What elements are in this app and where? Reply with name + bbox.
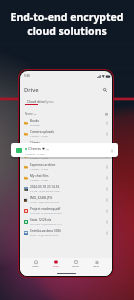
button[interactable]: Contracts 2024 [20,150,112,161]
staticText: 8 folders · 14 files [30,135,48,138]
staticText: 13.12 MB · 21 Jun 2024 at 09:31 [30,212,62,215]
other: More options [106,220,108,224]
staticText: 2024-03-18 23.14.52 [30,185,60,189]
staticText: End-to-end encrypted cloud solutions [0,10,134,38]
staticText: Clients [30,141,41,145]
staticText: 3 folders · 14 files [30,157,48,160]
staticText: Cloud drive [27,99,45,103]
other: More options [106,121,108,125]
staticText: IMG_32406.JPG [30,196,53,200]
staticText: Project roadmap.pdf [30,207,61,211]
button[interactable]: Search [101,86,108,93]
button[interactable]: 2024-03-18 23.14.52 [20,183,112,194]
other: More options [111,149,113,153]
staticText: Contracts 2024 [30,152,53,156]
staticText: 7 folders · 12 files [30,168,48,171]
staticText: 9:30 [24,74,30,78]
button[interactable]: My chat files [20,172,112,183]
button[interactable]: Clients [11,143,118,157]
button[interactable]: Project roadmap.pdf [20,205,112,216]
staticText: Menu [93,265,100,268]
staticText: Expenses archive [30,163,56,167]
button[interactable]: Name [24,112,37,116]
other: More options [106,198,108,202]
staticText: (2) [46,147,49,150]
staticText: 6 folders · 13 files [30,146,48,149]
other: More options [106,231,108,235]
staticText: Snimka-zaslona 5056 [30,229,61,233]
staticText: 15.18 MB · 18 Jun 2024 at 11:11 [30,223,62,226]
button[interactable]: Clients [20,139,112,150]
button[interactable]: Cloud drive [25,99,47,103]
staticText: 6 folders · 13 files [25,152,45,155]
staticText: Books [30,119,40,123]
staticText: 7 folders · 14 files [30,179,48,182]
staticText: 58 folders [30,124,41,127]
staticText: Home [32,265,39,268]
button[interactable]: IMG_32406.JPG [20,194,112,205]
staticText: My chat files [30,174,49,178]
button[interactable]: Menu [91,259,102,269]
button[interactable]: Syncs [45,99,54,103]
button[interactable]: Books [20,117,112,128]
other: More options [106,165,108,169]
other: More options [106,187,108,191]
staticText: Stats 12/26.xls [30,218,52,222]
staticText: Drive [24,86,39,94]
staticText: Camera uploads [30,130,55,134]
other: More options [106,176,108,180]
staticText: Syncs [45,99,54,103]
staticText: 58 KB · 17 Jun 2024 at 09:08 [30,234,59,237]
other: More options [106,132,108,136]
button[interactable]: Drive [51,259,61,269]
button[interactable]: Expenses archive [20,161,112,172]
button[interactable]: View mode [104,112,108,116]
staticText: Media [72,265,79,268]
button[interactable]: Snimka-zaslona 5056 [20,227,112,238]
staticText: 10 MB · 18 Jun 2024 at 12:32 [30,201,59,204]
staticText: Name [25,112,33,116]
staticText: Clients [28,146,41,151]
staticText: 3.5 MB · 18 Jun 2024 at 12:32 [30,190,60,193]
staticText: Drive [53,265,59,268]
button[interactable]: Stats 12/26.xls [20,216,112,227]
button[interactable]: Camera uploads [20,128,112,139]
other: More options [106,154,108,158]
other: More options [106,209,108,213]
button[interactable]: Media [70,259,81,269]
button[interactable]: Home [30,259,41,269]
